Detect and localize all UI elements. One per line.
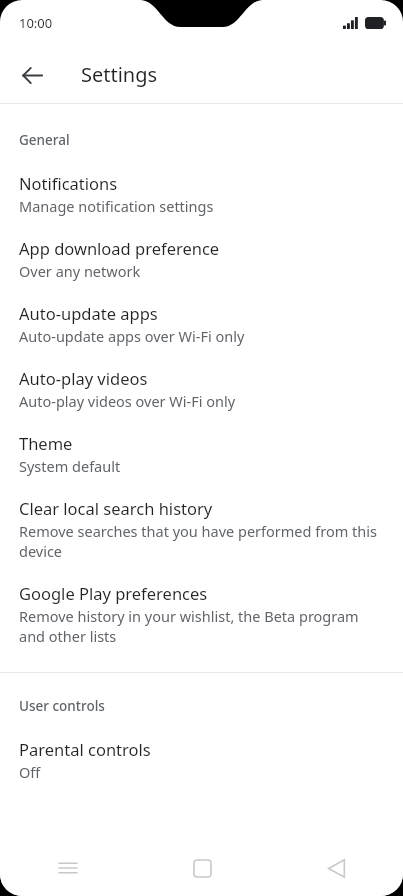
staticText: Auto-play videos [19, 367, 148, 389]
staticText: Notifications [19, 172, 118, 194]
staticText: Off [19, 762, 41, 782]
staticText: System default [19, 456, 121, 476]
button[interactable]: App download preference [0, 220, 403, 285]
button[interactable]: Theme [0, 415, 403, 480]
staticText: Remove history in your wishlist, the Bet… [19, 606, 381, 646]
staticText: Over any network [19, 261, 141, 281]
button[interactable]: Recent apps [0, 840, 135, 896]
button[interactable]: Parental controls [0, 721, 403, 786]
staticText: Settings [81, 61, 158, 88]
staticText: User controls [19, 697, 105, 715]
staticText: Auto-play videos over Wi-Fi only [19, 391, 236, 411]
staticText: General [19, 131, 70, 149]
staticText: Auto-update apps [19, 302, 158, 324]
staticText: Clear local search history [19, 497, 213, 519]
button[interactable]: Auto-play videos [0, 350, 403, 415]
button[interactable]: Back [269, 840, 403, 896]
button[interactable]: Notifications [0, 155, 403, 220]
staticText: Remove searches that you have performed … [19, 521, 381, 561]
staticText: App download preference [19, 237, 220, 259]
staticText: 10:00 [19, 14, 53, 32]
button[interactable]: Auto-update apps [0, 285, 403, 350]
staticText: Google Play preferences [19, 582, 208, 604]
button[interactable]: Back [14, 57, 50, 93]
staticText: Parental controls [19, 738, 151, 760]
button[interactable]: Clear local search history [0, 480, 403, 565]
button[interactable]: Google Play preferences [0, 565, 403, 650]
staticText: Auto-update apps over Wi-Fi only [19, 326, 245, 346]
staticText: Manage notification settings [19, 196, 214, 216]
button[interactable]: Home [135, 840, 269, 896]
staticText: Theme [19, 432, 73, 454]
